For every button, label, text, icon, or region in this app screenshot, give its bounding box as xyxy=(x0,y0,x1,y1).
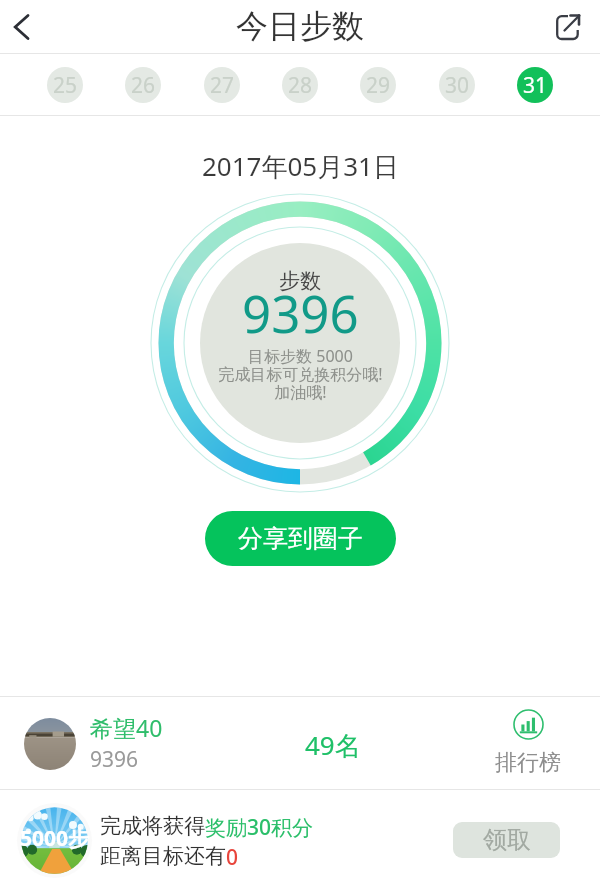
staticText: 完成将获得 xyxy=(100,813,205,839)
staticText: 26 xyxy=(131,71,156,100)
staticText: 28 xyxy=(288,71,313,100)
staticText: 31 xyxy=(523,71,548,100)
staticText: 2017年05月31日 xyxy=(202,148,399,184)
staticText: 27 xyxy=(210,71,235,100)
staticText: 0 xyxy=(226,843,239,872)
staticText: 领取 xyxy=(483,825,531,855)
staticText: 5000步 xyxy=(20,824,90,853)
button[interactable]: 27 xyxy=(204,67,240,103)
staticText: 完成目标可兑换积分哦! xyxy=(218,363,383,385)
staticText: 加油哦! xyxy=(274,381,327,403)
staticText: 今日步数 xyxy=(236,6,364,46)
button[interactable]: 31 xyxy=(517,67,553,103)
staticText: 9396 xyxy=(90,745,139,774)
button[interactable]: 分享到圈子 xyxy=(205,511,396,566)
button[interactable]: 28 xyxy=(282,67,318,103)
button[interactable]: 25 xyxy=(47,67,83,103)
staticText: 排行榜 xyxy=(495,749,561,777)
staticText: 29 xyxy=(366,71,391,100)
button[interactable]: 30 xyxy=(439,67,475,103)
staticText: 分享到圈子 xyxy=(238,523,363,554)
staticText: 奖励30积分 xyxy=(205,813,314,842)
staticText: 49名 xyxy=(305,727,361,763)
staticText: 距离目标还有 xyxy=(100,843,226,869)
button[interactable]: 领取 xyxy=(453,822,560,858)
staticText: 步数 xyxy=(279,268,321,294)
staticText: 25 xyxy=(53,71,78,100)
staticText: 9396 xyxy=(242,278,359,347)
button[interactable]: 29 xyxy=(360,67,396,103)
button[interactable]: Back xyxy=(0,0,50,54)
staticText: 目标步数 5000 xyxy=(248,345,353,367)
button[interactable]: Share xyxy=(540,0,600,54)
staticText: 30 xyxy=(445,71,470,100)
staticText: 希望40 xyxy=(90,712,163,743)
button[interactable]: 排行榜 xyxy=(468,703,588,783)
button[interactable]: 26 xyxy=(125,67,161,103)
button[interactable]: 希望40 xyxy=(0,697,600,789)
